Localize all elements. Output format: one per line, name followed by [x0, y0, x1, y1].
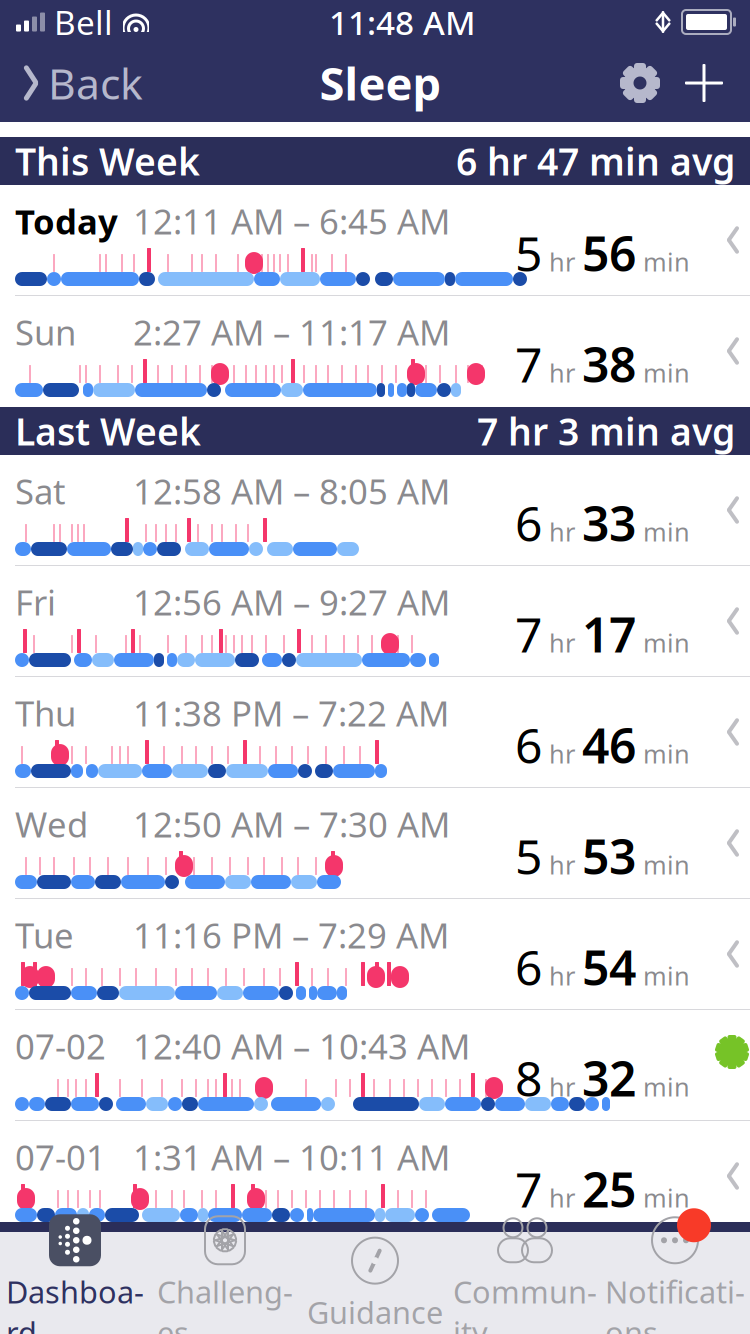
staticText: This Week [15, 136, 200, 186]
staticText: Notifications [605, 1271, 745, 1334]
staticText: 12:50 AM – 7:30 AM [133, 801, 450, 847]
staticText: 11:38 PM – 7:22 AM [133, 690, 449, 736]
staticText: min [636, 1181, 690, 1215]
button[interactable]: Notifications [600, 1232, 750, 1334]
staticText: 2:27 AM – 11:17 AM [133, 309, 450, 355]
staticText: hr [542, 626, 582, 660]
staticText: hr [542, 515, 582, 549]
staticText: 6 [515, 491, 542, 555]
staticText: Sleep [319, 53, 441, 113]
staticText: 7 [515, 602, 542, 666]
staticText: Thu [15, 690, 76, 736]
button[interactable]: Tue [0, 899, 750, 1010]
button[interactable]: Sun [0, 296, 750, 407]
staticText: 1:31 AM – 10:11 AM [133, 1134, 450, 1180]
staticText: Guidance [307, 1292, 443, 1332]
staticText: 46 [582, 713, 636, 777]
staticText: Bell [54, 0, 113, 44]
staticText: min [636, 959, 690, 993]
staticText: 53 [582, 824, 636, 888]
button[interactable]: Community [450, 1232, 600, 1334]
button[interactable]: Dashboard [0, 1232, 150, 1334]
staticText: 11:16 PM – 7:29 AM [133, 912, 449, 958]
staticText: 12:56 AM – 9:27 AM [133, 579, 450, 625]
staticText: 12:11 AM – 6:45 AM [133, 198, 450, 244]
staticText: 6 [515, 713, 542, 777]
staticText: min [636, 245, 690, 279]
staticText: Challenges [157, 1271, 293, 1334]
button[interactable]: Wed [0, 788, 750, 899]
staticText: 5 [515, 824, 542, 888]
staticText: min [636, 737, 690, 771]
staticText: 12:58 AM – 8:05 AM [133, 468, 450, 514]
staticText: Dashboard [6, 1271, 144, 1334]
staticText: 5 [515, 221, 542, 285]
staticText: 07-02 [15, 1023, 106, 1069]
staticText: Today [15, 198, 118, 244]
staticText: Back [48, 55, 143, 111]
staticText: 17 [582, 602, 636, 666]
staticText: 6 [515, 935, 542, 999]
button[interactable]: 07-02 [0, 1010, 750, 1121]
staticText: hr [542, 959, 582, 993]
button[interactable]: Today [0, 185, 750, 296]
staticText: Tue [15, 912, 74, 958]
staticText: 6 hr 47 min avg [456, 136, 735, 186]
staticText: 7 [515, 332, 542, 396]
staticText: min [636, 626, 690, 660]
staticText: hr [542, 1070, 582, 1104]
staticText: 32 [582, 1046, 636, 1110]
staticText: 33 [582, 491, 636, 555]
staticText: min [636, 848, 690, 882]
staticText: 7 [515, 1157, 542, 1221]
staticText: Sat [15, 468, 66, 514]
staticText: 07-01 [15, 1134, 106, 1180]
staticText: min [636, 515, 690, 549]
staticText: hr [542, 1181, 582, 1215]
button[interactable]: Guidance [300, 1232, 450, 1334]
button[interactable]: Thu [0, 677, 750, 788]
button[interactable]: 07-01 [0, 1121, 750, 1232]
button[interactable]: Challenges [150, 1232, 300, 1334]
button[interactable]: Back [0, 45, 143, 121]
button[interactable]: Add sleep log [684, 55, 750, 111]
staticText: 38 [582, 332, 636, 396]
staticText: Last Week [15, 406, 201, 456]
staticText: Sun [15, 309, 76, 355]
staticText: 8 [515, 1046, 542, 1110]
staticText: Community [453, 1271, 597, 1334]
button[interactable]: Fri [0, 566, 750, 677]
staticText: 54 [582, 935, 636, 999]
staticText: hr [542, 356, 582, 390]
staticText: hr [542, 245, 582, 279]
button[interactable]: Settings [618, 53, 684, 113]
staticText: hr [542, 737, 582, 771]
staticText: 11:48 AM [329, 0, 476, 44]
staticText: 25 [582, 1157, 636, 1221]
staticText: 56 [582, 221, 636, 285]
staticText: min [636, 1070, 690, 1104]
staticText: 7 hr 3 min avg [477, 406, 735, 456]
staticText: 12:40 AM – 10:43 AM [133, 1023, 470, 1069]
button[interactable]: Sat [0, 455, 750, 566]
staticText: Fri [15, 579, 56, 625]
staticText: Wed [15, 801, 88, 847]
staticText: min [636, 356, 690, 390]
staticText: hr [542, 848, 582, 882]
